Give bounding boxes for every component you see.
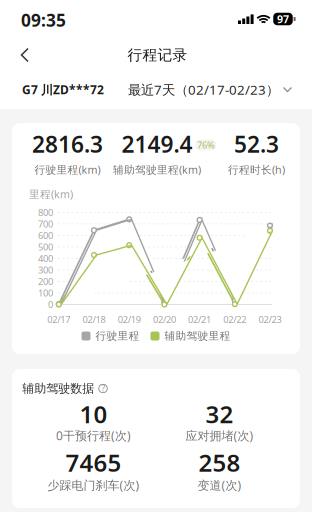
staticText: 7465 [65, 447, 121, 478]
staticText: 97 [277, 12, 289, 26]
staticText: 辅助驾驶里程(km) [113, 162, 201, 177]
staticText: 32 [205, 398, 233, 430]
button[interactable]: 说明 [98, 384, 108, 393]
staticText: 500 [38, 241, 53, 253]
staticText: 辅助驾驶数据 [22, 381, 94, 396]
staticText: 400 [38, 252, 53, 265]
staticText: 800 [38, 206, 53, 219]
staticText: 辅助驾驶里程 [164, 329, 230, 342]
staticText: 258 [198, 447, 240, 478]
staticText: 2816.3 [32, 129, 103, 159]
staticText: 行程记录 [127, 46, 187, 64]
staticText: 52.3 [234, 129, 279, 159]
staticText: 02/23 [258, 313, 281, 326]
staticText: 2149.4 [121, 129, 192, 159]
staticText: 变道(次) [197, 477, 241, 493]
button[interactable]: Back [11, 41, 51, 69]
staticText: 300 [38, 264, 53, 276]
staticText: 09:35 [21, 8, 66, 31]
staticText: 少踩电门刹车(次) [47, 477, 139, 493]
staticText: 02/21 [188, 313, 211, 326]
staticText: 600 [38, 229, 53, 242]
staticText: 02/19 [118, 313, 141, 326]
staticText: 里程(km) [29, 187, 73, 201]
staticText: G7 川ZD***72 [22, 81, 104, 97]
staticText: 200 [38, 275, 53, 288]
staticText: ? [101, 383, 104, 394]
staticText: 02/18 [82, 313, 105, 326]
staticText: 行驶里程 [95, 329, 139, 342]
staticText: 02/20 [153, 313, 176, 326]
staticText: 0干预行程(次) [56, 427, 131, 443]
staticText: 700 [38, 218, 53, 230]
staticText: 76% [197, 139, 215, 151]
staticText: 02/22 [223, 313, 246, 326]
staticText: 行驶里程(km) [34, 162, 100, 177]
staticText: 02/17 [47, 313, 70, 326]
staticText: 10 [79, 398, 107, 430]
staticText: 行程时长(h) [228, 162, 285, 177]
staticText: 0 [48, 298, 53, 311]
staticText: 100 [38, 287, 53, 299]
staticText: 应对拥堵(次) [185, 427, 253, 443]
button[interactable]: G7 川ZD***72 [22, 81, 104, 97]
button[interactable]: 最近7天（02/17-02/23） [128, 81, 292, 98]
staticText: 最近7天（02/17-02/23） [128, 81, 279, 98]
